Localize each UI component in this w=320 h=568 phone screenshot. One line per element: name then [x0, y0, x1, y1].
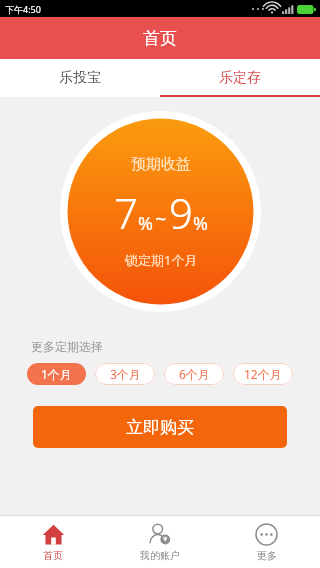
button[interactable]: 我的账户: [106, 516, 213, 568]
staticText: 9: [169, 184, 193, 241]
staticText: 立即购买: [126, 417, 194, 438]
staticText: 乐定存: [219, 69, 261, 87]
staticText: 首页: [43, 549, 63, 562]
button[interactable]: 6个月: [164, 363, 224, 385]
staticText: 预期收益: [131, 155, 191, 174]
button[interactable]: 3个月: [95, 363, 155, 385]
button[interactable]: 更多: [213, 516, 320, 568]
staticText: ~: [155, 205, 167, 232]
button[interactable]: 1个月: [27, 363, 86, 385]
staticText: 乐投宝: [59, 69, 101, 87]
staticText: 更多: [257, 549, 277, 562]
button[interactable]: 乐投宝: [0, 59, 160, 97]
staticText: 锁定期1个月: [125, 251, 198, 269]
button[interactable]: 12个月: [233, 363, 293, 385]
button[interactable]: 首页: [0, 516, 106, 568]
button[interactable]: 乐定存: [160, 59, 320, 97]
staticText: 更多定期选择: [31, 339, 103, 354]
staticText: 首页: [143, 28, 177, 49]
staticText: 12个月: [244, 366, 282, 382]
staticText: %: [193, 211, 208, 236]
staticText: 下午4:50: [5, 3, 41, 15]
button[interactable]: 立即购买: [33, 406, 287, 448]
staticText: 1个月: [41, 366, 72, 382]
staticText: %: [138, 211, 153, 236]
staticText: 7: [114, 184, 138, 241]
staticText: 我的账户: [140, 549, 180, 562]
staticText: 6个月: [179, 366, 210, 382]
staticText: 3个月: [110, 366, 141, 382]
